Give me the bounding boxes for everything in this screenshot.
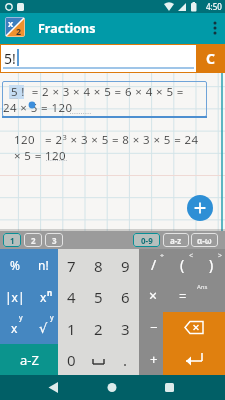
staticText: a-Z xyxy=(20,351,39,369)
staticText: 4:50 xyxy=(206,1,222,12)
staticText: 2 xyxy=(94,319,103,339)
staticText: 3 xyxy=(52,235,57,246)
staticText: 2 xyxy=(31,235,36,246)
staticText: Fractions xyxy=(38,20,96,37)
button[interactable]: 8 xyxy=(85,250,112,281)
staticText: 0-9 xyxy=(141,235,153,246)
button[interactable]: x xyxy=(1,317,28,339)
button[interactable] xyxy=(170,344,218,375)
button[interactable]: a-z xyxy=(163,233,189,247)
staticText: 24 × 5 = 120 xyxy=(3,100,73,116)
button[interactable]: 3 xyxy=(112,313,139,344)
staticText: % xyxy=(10,257,20,273)
button[interactable]: ( xyxy=(168,250,197,279)
button[interactable]: 3 xyxy=(45,233,63,247)
staticText: x xyxy=(40,289,47,305)
button[interactable]: 9 xyxy=(112,250,139,281)
staticText: 2 xyxy=(16,25,22,37)
button[interactable] xyxy=(150,375,225,400)
staticText: > xyxy=(218,251,223,261)
staticText: Ans xyxy=(197,283,208,291)
button[interactable]: x xyxy=(30,286,57,308)
staticText: < xyxy=(189,251,194,261)
button[interactable]: = xyxy=(168,281,197,310)
button[interactable] xyxy=(208,21,222,35)
staticText: α-ω xyxy=(197,235,212,246)
staticText: 5 ! = 2 × 3 × 4 × 5 = 6 × 4 × 5 = xyxy=(11,84,184,100)
staticText: 6 xyxy=(121,287,130,307)
staticText: 7 xyxy=(67,256,76,276)
button[interactable]: 0 xyxy=(58,344,85,375)
staticText: = xyxy=(179,287,187,305)
staticText: × 5 = 120 xyxy=(14,148,67,164)
staticText: 5! xyxy=(4,49,16,68)
button[interactable]: ) xyxy=(197,250,225,279)
button[interactable]: α-ω xyxy=(191,233,218,247)
staticText: 9 xyxy=(121,256,130,276)
button[interactable]: 5 xyxy=(85,281,112,312)
button[interactable]: 2 xyxy=(85,313,112,344)
button[interactable]: 1 xyxy=(3,233,21,247)
button[interactable] xyxy=(170,312,218,343)
button[interactable]: |x| xyxy=(1,286,28,308)
staticText: 1 xyxy=(67,319,76,339)
button[interactable]: . xyxy=(112,344,139,375)
button[interactable]: 2 xyxy=(24,233,42,247)
staticText: 5 xyxy=(94,287,103,307)
staticText: 0 xyxy=(67,350,76,370)
staticText: x xyxy=(8,17,14,29)
staticText: + xyxy=(150,350,158,368)
staticText: y xyxy=(19,313,23,323)
button[interactable]: C xyxy=(196,44,225,73)
button[interactable]: √ xyxy=(30,317,57,339)
staticText: 4 xyxy=(67,287,76,307)
button[interactable] xyxy=(85,344,112,375)
staticText: − xyxy=(150,318,158,336)
button[interactable] xyxy=(187,195,213,221)
button[interactable]: 7 xyxy=(58,250,85,281)
staticText: 120 = 23 × 3 × 5 = 8 × 3 × 5 = 24 xyxy=(14,132,199,148)
staticText: n xyxy=(47,287,53,298)
staticText: 8 xyxy=(94,256,103,276)
staticText: x xyxy=(11,320,18,336)
button[interactable]: n! xyxy=(30,254,57,276)
staticText: √ xyxy=(39,321,48,336)
staticText: × xyxy=(149,286,158,305)
button[interactable]: / xyxy=(139,250,168,279)
button[interactable]: a-Z xyxy=(0,344,58,375)
staticText: 1 xyxy=(10,235,15,246)
button[interactable]: % xyxy=(1,254,28,276)
button[interactable]: 6 xyxy=(112,281,139,312)
staticText: . xyxy=(123,350,128,370)
button[interactable] xyxy=(0,375,75,400)
button[interactable]: − xyxy=(139,312,168,341)
staticText: |x| xyxy=(5,289,25,305)
staticText: ( xyxy=(180,255,185,274)
staticText: ) xyxy=(209,255,214,274)
staticText: C xyxy=(206,49,215,68)
staticText: a-z xyxy=(170,235,182,246)
staticText: 3 xyxy=(121,319,130,339)
staticText: n! xyxy=(38,257,49,273)
staticText: y xyxy=(50,313,54,323)
button[interactable] xyxy=(75,375,150,400)
button[interactable]: 1 xyxy=(58,313,85,344)
button[interactable]: 4 xyxy=(58,281,85,312)
button[interactable]: × xyxy=(139,281,168,310)
staticText: ÷ xyxy=(160,251,165,261)
staticText: / xyxy=(151,255,157,274)
button[interactable]: + xyxy=(139,343,168,374)
button[interactable]: 0-9 xyxy=(133,233,160,247)
